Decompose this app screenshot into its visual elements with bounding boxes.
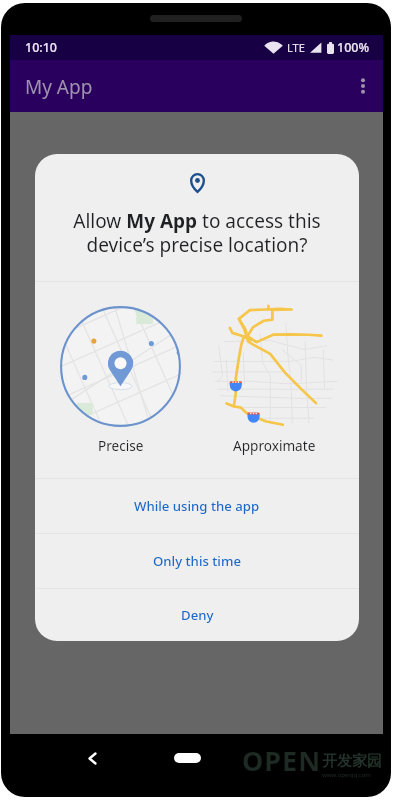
staticText: Only this time (153, 552, 241, 570)
staticText: LTE (287, 40, 305, 55)
staticText: 100% (337, 39, 370, 56)
staticText: Approximate (233, 436, 316, 455)
staticText: Deny (181, 606, 214, 624)
staticText: 开发家园 (322, 752, 382, 771)
staticText: My App (25, 74, 93, 100)
staticText: www.openjq.com (322, 771, 371, 779)
staticText: 10:10 (25, 39, 58, 56)
button[interactable]: Approximate (197, 282, 359, 478)
button[interactable]: More options (343, 66, 383, 106)
staticText: While using the app (134, 497, 260, 515)
button[interactable]: Home (174, 753, 201, 763)
staticText: OPEN (242, 742, 322, 779)
button[interactable]: Deny (35, 589, 359, 641)
button[interactable]: While using the app (35, 479, 359, 533)
staticText: Precise (98, 436, 144, 455)
staticText: Allow My App to access this device’s pre… (53, 208, 341, 257)
button[interactable]: Back (80, 746, 105, 771)
button[interactable]: Only this time (35, 534, 359, 588)
button[interactable]: Precise (60, 282, 181, 478)
